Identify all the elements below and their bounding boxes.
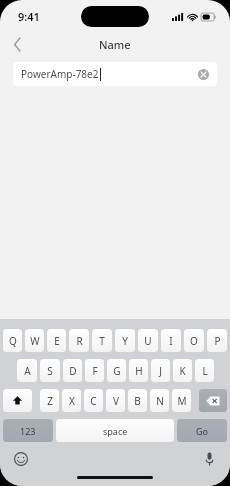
staticText: F: [92, 364, 98, 378]
staticText: space: [103, 425, 128, 437]
staticText: V: [113, 394, 119, 408]
staticText: Name: [99, 37, 131, 52]
button[interactable]: M: [172, 389, 191, 412]
staticText: Z: [47, 394, 53, 408]
button[interactable]: Emoji: [10, 448, 32, 470]
staticText: T: [99, 334, 105, 348]
staticText: M: [177, 394, 187, 408]
staticText: O: [190, 334, 198, 348]
button[interactable]: L: [195, 359, 214, 382]
staticText: 9:41: [18, 9, 40, 24]
staticText: W: [30, 334, 40, 348]
staticText: I: [169, 334, 173, 348]
button[interactable]: O: [184, 329, 204, 352]
button[interactable]: Q: [3, 329, 22, 352]
staticText: PowerAmp-78e2: [21, 67, 99, 81]
button[interactable]: H: [129, 359, 148, 382]
staticText: Q: [9, 334, 17, 348]
button[interactable]: W: [25, 329, 44, 352]
staticText: G: [113, 364, 121, 378]
button[interactable]: T: [92, 329, 112, 352]
button[interactable]: Clear text: [195, 66, 211, 82]
button[interactable]: K: [173, 359, 192, 382]
button[interactable]: R: [69, 329, 89, 352]
button[interactable]: B: [128, 389, 147, 412]
button[interactable]: C: [84, 389, 103, 412]
button[interactable]: D: [63, 359, 82, 382]
button[interactable]: Go: [177, 419, 227, 442]
staticText: B: [134, 394, 141, 408]
button[interactable]: Z: [40, 389, 59, 412]
button[interactable]: I: [161, 329, 181, 352]
button[interactable]: X: [62, 389, 81, 412]
button[interactable]: 123: [3, 419, 53, 442]
staticText: E: [54, 334, 60, 348]
button[interactable]: A: [17, 359, 37, 382]
staticText: R: [76, 334, 83, 348]
button[interactable]: space: [56, 419, 174, 442]
button[interactable]: PowerAmp-78e2: [13, 62, 217, 86]
staticText: S: [47, 364, 53, 378]
button[interactable]: E: [47, 329, 66, 352]
button[interactable]: P: [207, 329, 227, 352]
staticText: P: [214, 334, 221, 348]
button[interactable]: V: [106, 389, 125, 412]
button[interactable]: N: [150, 389, 169, 412]
button[interactable]: Backspace: [199, 389, 227, 412]
button[interactable]: Y: [115, 329, 135, 352]
staticText: K: [179, 364, 186, 378]
staticText: A: [24, 364, 31, 378]
staticText: D: [69, 364, 77, 378]
staticText: C: [90, 394, 97, 408]
button[interactable]: U: [138, 329, 158, 352]
staticText: J: [159, 364, 162, 378]
staticText: 123: [20, 425, 36, 437]
button[interactable]: F: [85, 359, 104, 382]
button[interactable]: Back: [0, 30, 34, 58]
staticText: N: [156, 394, 164, 408]
button[interactable]: J: [151, 359, 170, 382]
button[interactable]: Dictation: [198, 448, 220, 470]
button[interactable]: S: [40, 359, 60, 382]
staticText: L: [202, 364, 208, 378]
staticText: H: [135, 364, 143, 378]
staticText: X: [69, 394, 75, 408]
button[interactable]: G: [107, 359, 126, 382]
staticText: Y: [122, 334, 128, 348]
staticText: U: [144, 334, 152, 348]
staticText: Go: [196, 425, 208, 437]
button[interactable]: Shift: [3, 389, 32, 412]
